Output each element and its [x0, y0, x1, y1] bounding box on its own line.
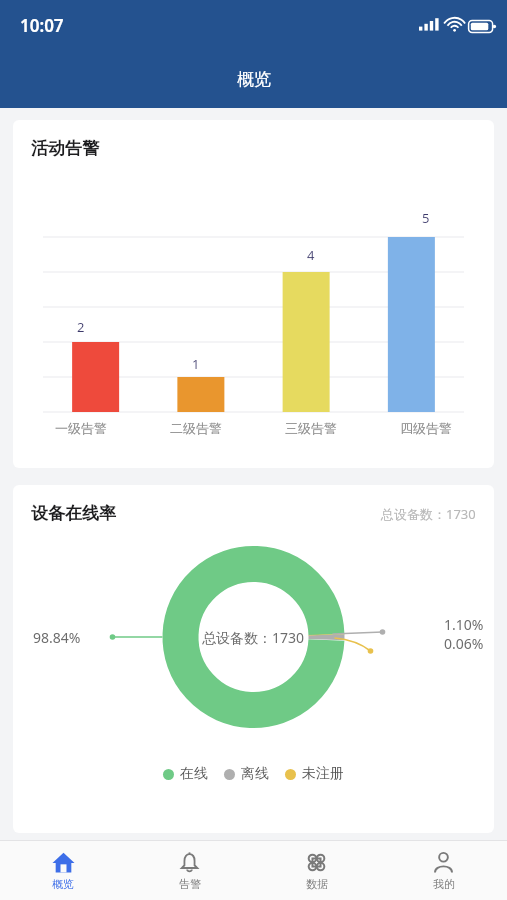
- button[interactable]: 数据: [253, 841, 380, 900]
- staticText: 一级告警: [55, 420, 107, 436]
- staticText: 在线: [180, 765, 208, 783]
- staticText: 总设备数：1730: [381, 505, 476, 523]
- staticText: 四级告警: [400, 420, 452, 436]
- staticText: 0.06%: [444, 634, 484, 653]
- staticText: 告警: [179, 877, 201, 891]
- staticText: 设备在线率: [31, 503, 116, 524]
- staticText: 三级告警: [285, 420, 337, 436]
- staticText: 概览: [237, 69, 271, 90]
- staticText: 5: [422, 209, 430, 227]
- staticText: 98.84%: [33, 628, 81, 647]
- staticText: 活动告警: [31, 138, 99, 159]
- staticText: 离线: [241, 765, 269, 783]
- staticText: 2: [77, 318, 85, 336]
- button[interactable]: 概览: [0, 841, 126, 900]
- staticText: 二级告警: [170, 420, 222, 436]
- staticText: 概览: [52, 877, 74, 891]
- staticText: 10:07: [20, 14, 64, 37]
- staticText: 1: [192, 355, 200, 373]
- button[interactable]: 在线: [163, 765, 208, 783]
- staticText: 未注册: [302, 765, 344, 783]
- button[interactable]: 告警: [126, 841, 253, 900]
- staticText: 4: [307, 246, 315, 264]
- staticText: 1.10%: [444, 615, 484, 634]
- staticText: 我的: [433, 877, 455, 891]
- button[interactable]: 我的: [380, 841, 507, 900]
- button[interactable]: 未注册: [285, 765, 344, 783]
- staticText: 总设备数：1730: [202, 628, 305, 647]
- button[interactable]: 离线: [224, 765, 269, 783]
- staticText: 数据: [306, 877, 328, 891]
